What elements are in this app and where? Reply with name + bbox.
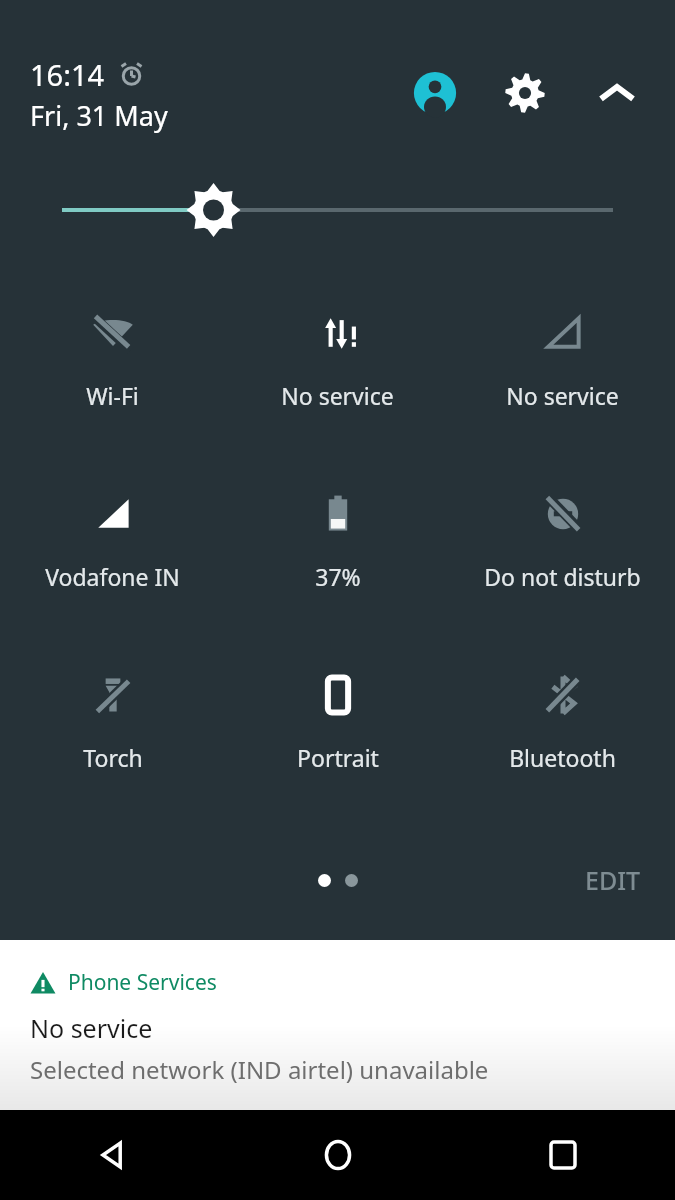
staticText: Fri, 31 May [30, 97, 168, 134]
button[interactable]: Collapse [593, 69, 641, 117]
button[interactable] [62, 182, 613, 238]
button[interactable]: Wi-Fi [0, 310, 225, 411]
button[interactable]: Back [0, 1110, 225, 1200]
button[interactable]: Portrait [225, 672, 450, 773]
staticText: Torch [83, 742, 143, 773]
button[interactable]: 37% [225, 491, 450, 592]
button[interactable]: Torch [0, 672, 225, 773]
button[interactable]: Home [225, 1110, 450, 1200]
staticText: Do not disturb [484, 561, 641, 592]
button[interactable]: Phone Services [0, 940, 675, 1110]
staticText: Selected network (IND airtel) unavailabl… [30, 1053, 489, 1086]
staticText: No service [281, 380, 394, 411]
button[interactable]: Bluetooth [450, 672, 675, 773]
button[interactable]: Do not disturb [450, 491, 675, 592]
button[interactable]: EDIT [585, 863, 641, 897]
staticText: Phone Services [68, 968, 217, 997]
staticText: 37% [315, 561, 361, 592]
staticText: 16:14 [30, 55, 105, 94]
button[interactable]: Vodafone IN [0, 491, 225, 592]
button[interactable]: No service [225, 310, 450, 411]
staticText: Vodafone IN [45, 561, 180, 592]
staticText: Bluetooth [509, 742, 616, 773]
button[interactable]: Settings [501, 69, 549, 117]
button[interactable]: User [411, 69, 459, 117]
button[interactable]: Recent apps [450, 1110, 675, 1200]
staticText: Wi-Fi [86, 380, 139, 411]
staticText: No service [30, 1011, 153, 1045]
staticText: No service [506, 380, 619, 411]
button[interactable]: No service [450, 310, 675, 411]
staticText: Portrait [297, 742, 379, 773]
staticText: EDIT [585, 863, 641, 897]
